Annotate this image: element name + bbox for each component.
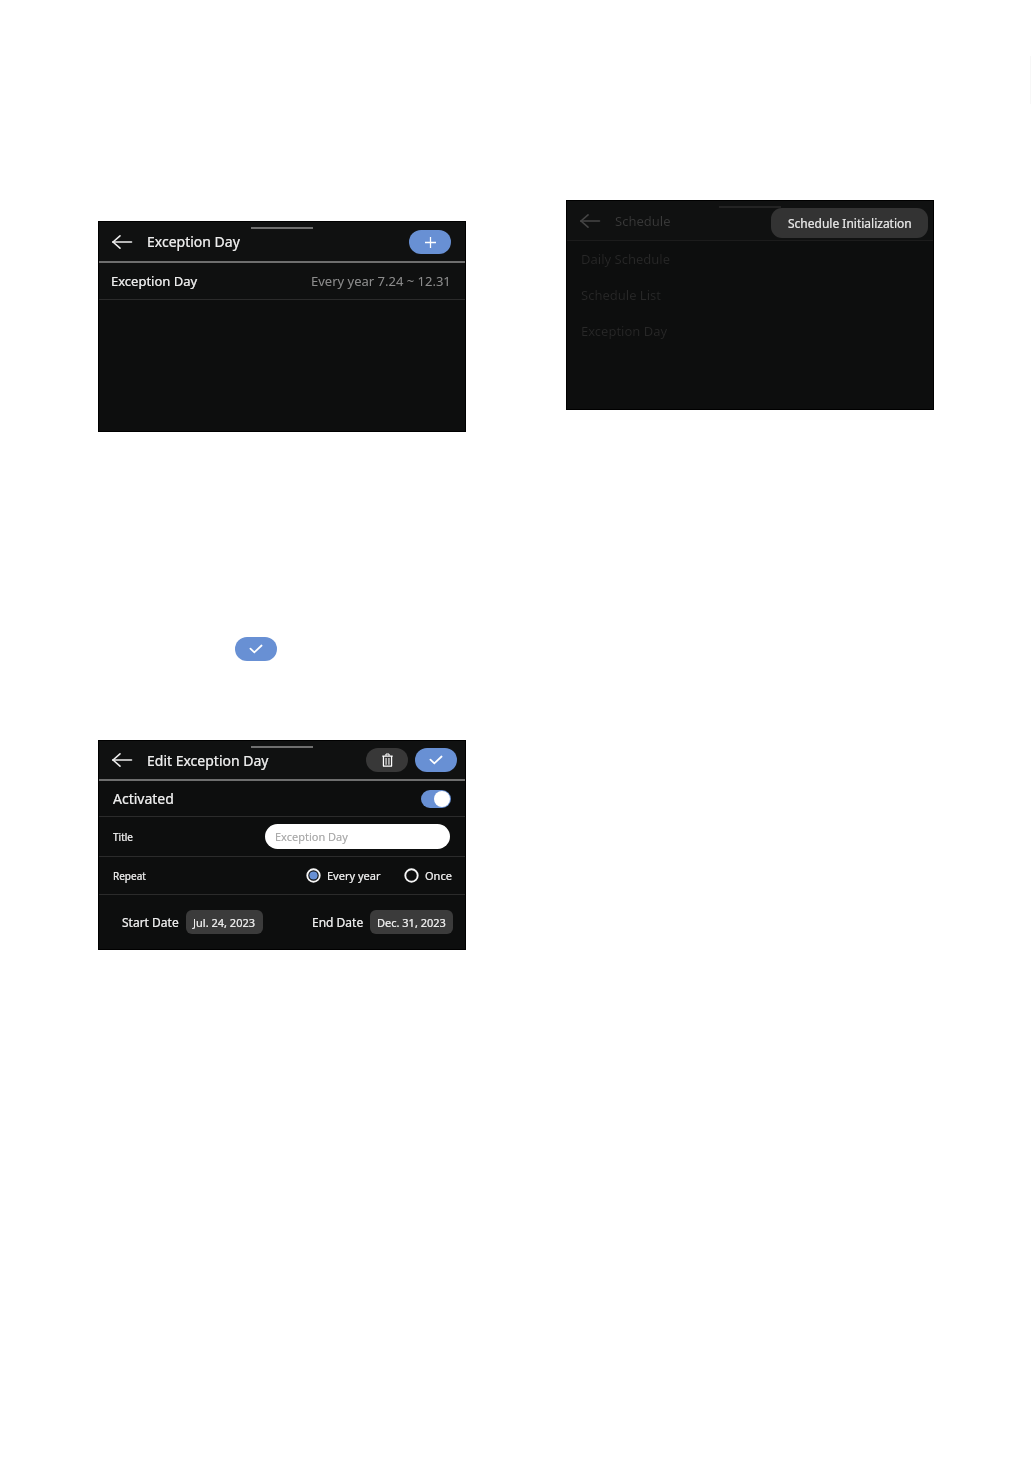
staticText: Every year 7.24 ~ 12.31 — [311, 272, 451, 290]
staticText: Exception Day — [111, 272, 198, 290]
staticText: Exception Day — [147, 232, 240, 251]
staticText: Exception Day — [581, 322, 668, 340]
staticText: Once — [425, 868, 452, 883]
staticText: Start Date — [122, 914, 179, 930]
button[interactable]: Add — [409, 230, 451, 254]
staticText: Dec. 31, 2023 — [377, 915, 446, 930]
button[interactable]: End Date — [312, 907, 453, 937]
staticText: Schedule — [615, 212, 671, 230]
button[interactable]: Exception Day — [99, 263, 465, 299]
staticText: Repeat — [113, 869, 146, 883]
staticText: Daily Schedule — [581, 250, 670, 268]
button[interactable]: Delete — [366, 748, 408, 772]
button[interactable]: Back — [578, 208, 602, 234]
button[interactable]: Every year — [306, 868, 381, 883]
staticText: Edit Exception Day — [147, 751, 269, 770]
button[interactable]: Save — [415, 748, 457, 772]
staticText: Jul. 24, 2023 — [193, 915, 256, 930]
staticText: End Date — [312, 914, 364, 930]
button[interactable]: Exception Day — [265, 824, 450, 849]
staticText: Schedule Initialization — [788, 215, 912, 231]
staticText: Schedule List — [581, 286, 661, 304]
button[interactable]: Once — [404, 868, 452, 883]
button[interactable]: Confirm — [235, 637, 277, 661]
staticText: Title — [113, 830, 133, 844]
button[interactable]: Activated toggle, on — [421, 790, 451, 808]
button[interactable]: Start Date — [122, 907, 263, 937]
button[interactable]: Schedule Initialization — [771, 208, 928, 238]
staticText: Exception Day — [275, 829, 348, 844]
staticText: Activated — [113, 789, 174, 808]
staticText: Every year — [327, 868, 381, 883]
button[interactable]: Dec. 31, 2023 — [370, 910, 453, 934]
button[interactable]: Activated — [99, 781, 465, 816]
button[interactable]: Jul. 24, 2023 — [186, 910, 263, 934]
button[interactable]: Back — [110, 229, 134, 255]
button[interactable]: Back — [110, 747, 134, 773]
